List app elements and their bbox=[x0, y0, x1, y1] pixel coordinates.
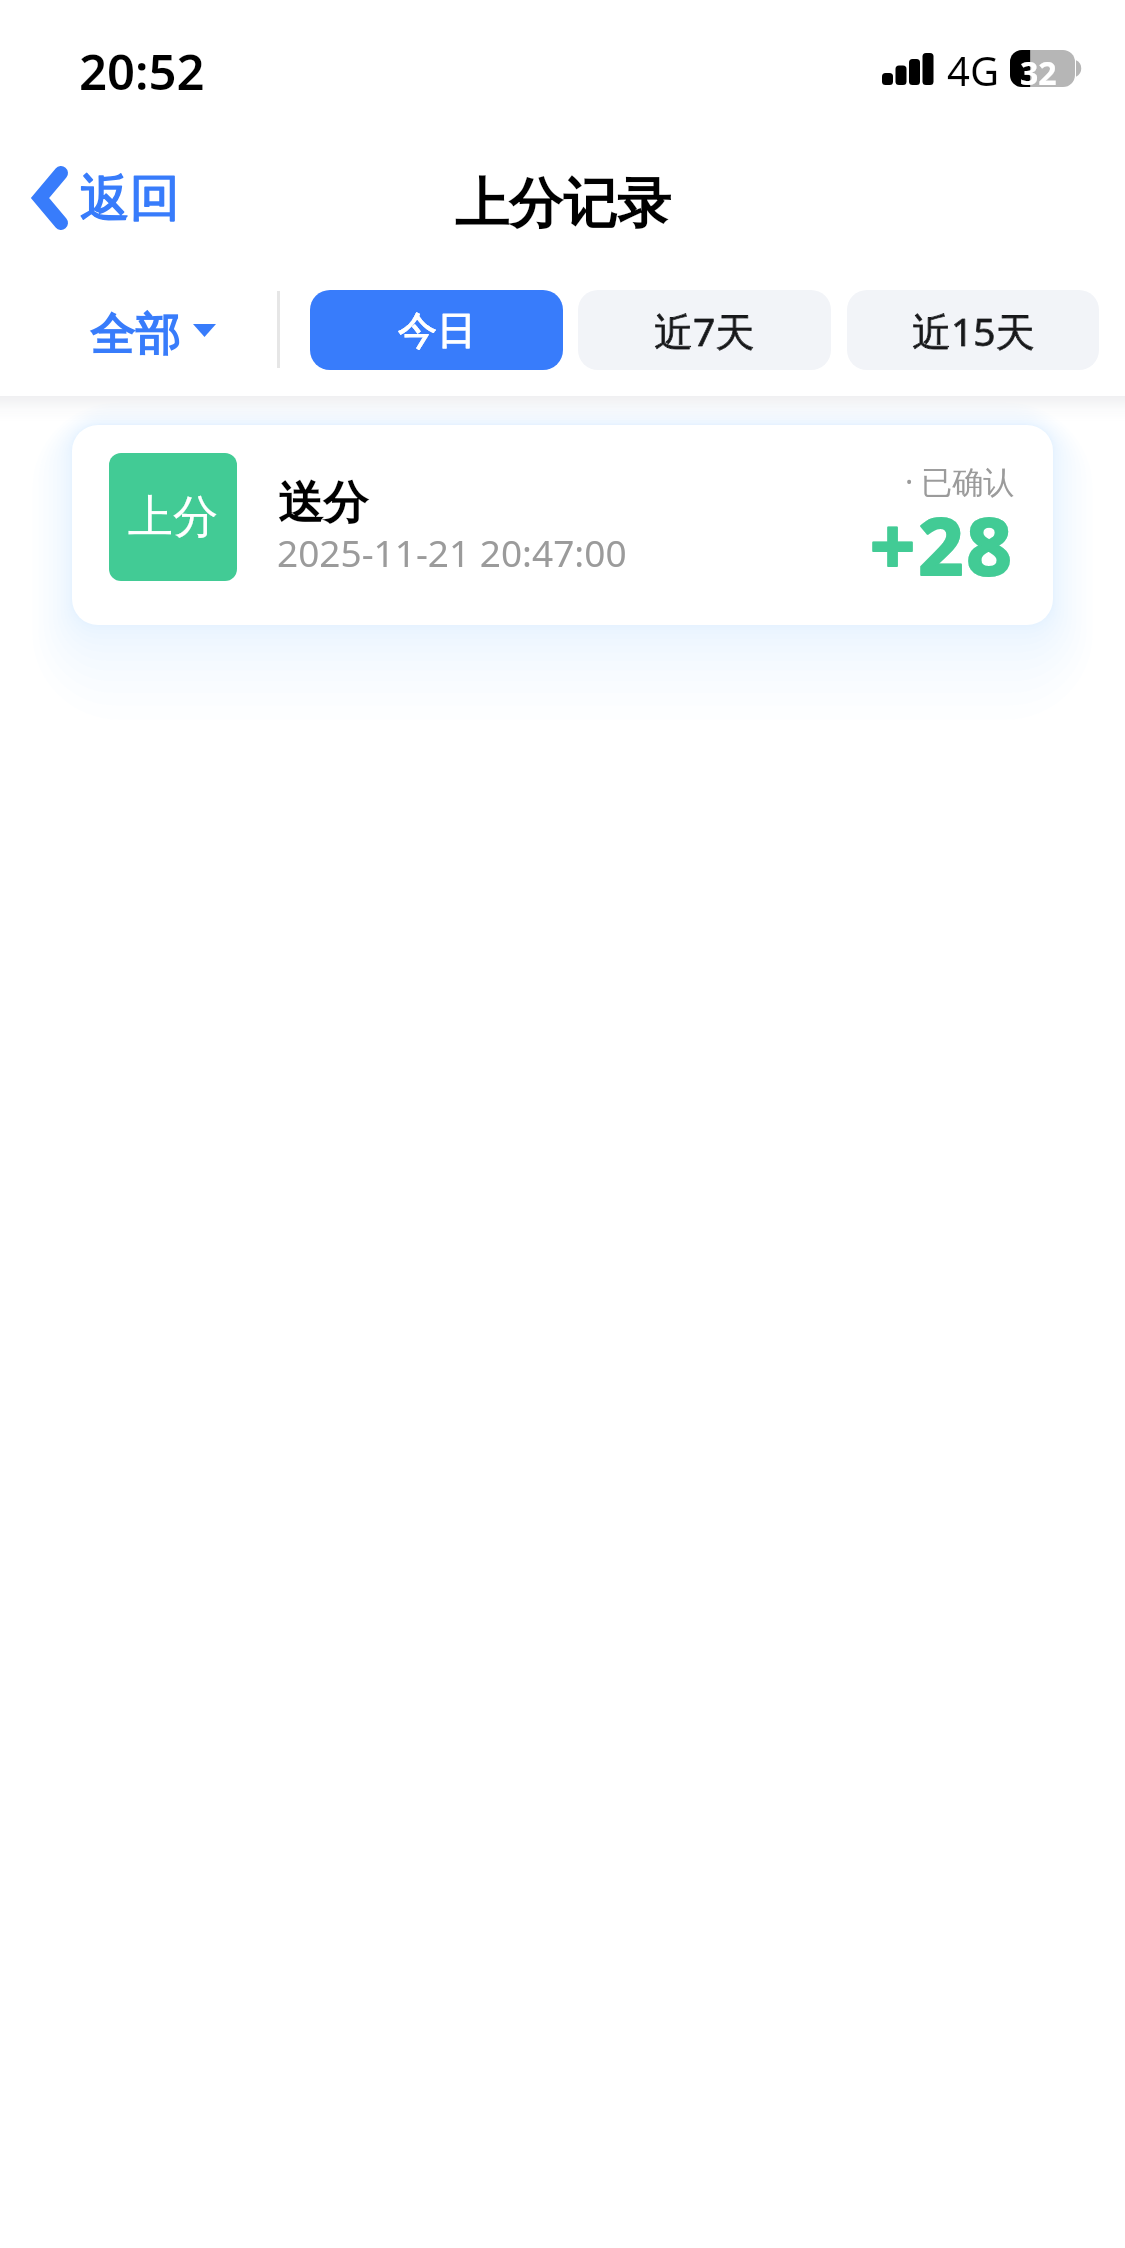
staticText: 上分记录 bbox=[455, 170, 671, 238]
staticText: 送分 bbox=[278, 475, 368, 532]
staticText: 2025-11-21 20:47:00 bbox=[277, 527, 627, 577]
button[interactable]: 近15天 bbox=[847, 290, 1099, 370]
staticText: +28 bbox=[870, 491, 1015, 599]
button[interactable]: 返回 Back bbox=[0, 154, 204, 242]
staticText: 近15天 bbox=[912, 304, 1035, 357]
staticText: +28 bbox=[870, 491, 1015, 599]
staticText: 今日 bbox=[398, 306, 476, 355]
staticText: 32 bbox=[1020, 51, 1057, 88]
staticText: 全部 bbox=[90, 307, 180, 364]
staticText: 今日 bbox=[398, 306, 476, 355]
button[interactable]: 近7天 bbox=[578, 290, 831, 370]
staticText: · 已确认 bbox=[905, 460, 1015, 502]
staticText: 近7天 bbox=[654, 304, 755, 357]
button[interactable]: 全部 bbox=[56, 291, 250, 380]
staticText: 近7天 bbox=[654, 304, 755, 357]
button[interactable]: 上分 bbox=[72, 425, 1053, 625]
staticText: 返回 bbox=[80, 167, 180, 230]
staticText: 上分 bbox=[128, 489, 218, 546]
staticText: 4G bbox=[947, 43, 999, 97]
staticText: 返回 bbox=[80, 167, 180, 230]
staticText: 20:52 bbox=[79, 38, 205, 105]
button[interactable]: 今日 bbox=[310, 290, 563, 370]
staticText: 近15天 bbox=[912, 304, 1035, 357]
